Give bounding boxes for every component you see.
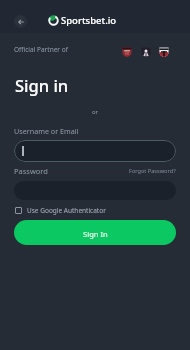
staticText: Username or Email xyxy=(14,126,79,136)
staticText: Official Partner of xyxy=(14,45,68,54)
staticText: Sportsbet.io xyxy=(61,14,117,27)
staticText: Sign in xyxy=(15,74,69,96)
button[interactable]: Use Google Authenticator xyxy=(15,206,106,215)
staticText: Password xyxy=(14,166,48,176)
button[interactable]: Back xyxy=(14,15,27,28)
button[interactable] xyxy=(14,140,176,162)
button[interactable]: Forgot Password? xyxy=(129,167,176,175)
staticText: or xyxy=(0,108,190,116)
staticText: Sign In xyxy=(83,229,108,239)
button[interactable]: Sign In xyxy=(14,220,176,245)
staticText: Use Google Authenticator xyxy=(27,206,106,215)
